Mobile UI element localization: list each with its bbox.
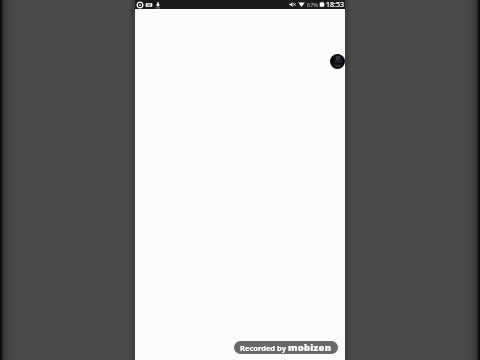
staticText: 67% bbox=[307, 1, 318, 8]
staticText: mobizen bbox=[288, 341, 332, 354]
staticText: 18:53 bbox=[326, 0, 344, 9]
button[interactable]: Recording controls bbox=[330, 54, 345, 69]
staticText: Recorded by bbox=[240, 343, 286, 353]
